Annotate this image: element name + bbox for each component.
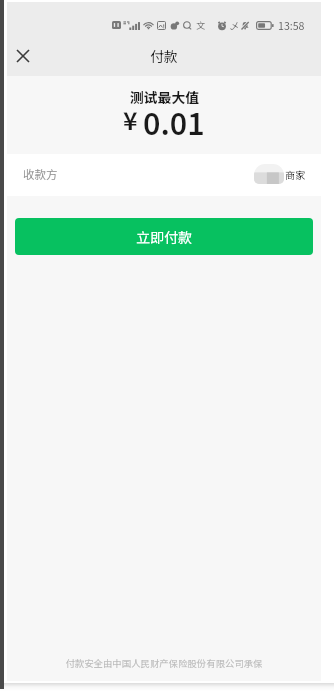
staticText: 收款方	[23, 166, 58, 183]
button[interactable]: 收款方	[7, 154, 321, 196]
staticText: 立即付款	[136, 227, 192, 247]
button[interactable]: 立即付款	[15, 218, 313, 255]
staticText: 测试最大值	[130, 87, 199, 107]
staticText: ¥	[123, 101, 138, 137]
button[interactable]: Close	[9, 42, 37, 70]
staticText: 付款	[150, 46, 178, 66]
staticText: 13:58	[278, 18, 305, 33]
staticText: 付款安全由中国人民财产保险股份有限公司承保	[7, 656, 321, 670]
staticText: 商家	[285, 167, 305, 181]
staticText: 文	[196, 19, 206, 32]
staticText: 0.01	[143, 100, 205, 143]
staticText: 乄	[230, 19, 240, 32]
